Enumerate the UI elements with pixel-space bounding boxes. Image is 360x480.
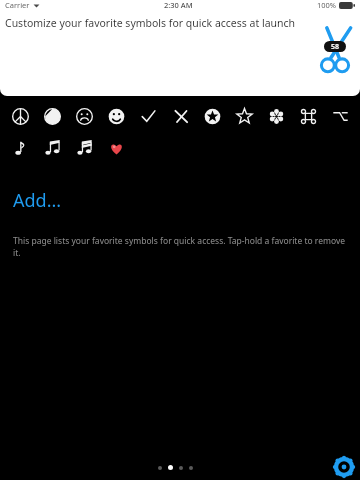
button[interactable]: STARC xyxy=(198,104,226,128)
button[interactable]: N8B xyxy=(38,136,66,160)
button[interactable]: Page 1 xyxy=(158,466,162,470)
button[interactable]: Settings xyxy=(334,457,354,477)
button[interactable]: N8 xyxy=(6,136,34,160)
staticText: 58 xyxy=(331,42,340,52)
button[interactable]: HEART xyxy=(102,136,130,160)
button[interactable]: XMARK xyxy=(166,104,194,128)
button[interactable]: MOON xyxy=(38,104,66,128)
button[interactable]: STARO xyxy=(230,104,258,128)
button[interactable]: SMILE xyxy=(102,104,130,128)
button[interactable]: OPT xyxy=(326,104,354,128)
button[interactable]: Add... xyxy=(13,188,62,213)
button[interactable]: Scissors, 58 items xyxy=(318,25,352,73)
button[interactable]: FROWN xyxy=(70,104,98,128)
button[interactable]: N16B xyxy=(70,136,98,160)
staticText: Add... xyxy=(13,188,62,213)
button[interactable]: PEACE xyxy=(6,104,34,128)
button[interactable]: CMD xyxy=(294,104,322,128)
staticText: Carrier xyxy=(5,0,30,10)
button[interactable]: CHECK xyxy=(134,104,162,128)
staticText: 100% xyxy=(317,0,337,10)
button[interactable]: Page 4 xyxy=(189,466,193,470)
staticText: 2:30 AM xyxy=(164,0,193,10)
staticText: This page lists your favorite symbols fo… xyxy=(13,235,350,259)
button[interactable]: FLOWER xyxy=(262,104,290,128)
button[interactable]: Page 2 xyxy=(168,465,173,470)
button[interactable]: Page 3 xyxy=(179,466,183,470)
staticText: Customize your favorite symbols for quic… xyxy=(5,16,296,30)
